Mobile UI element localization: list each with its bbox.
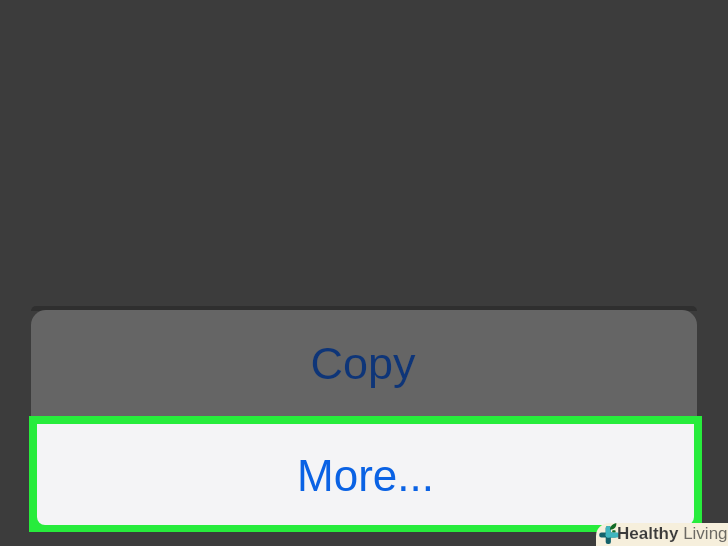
button[interactable]: Copy xyxy=(31,310,697,418)
button[interactable]: More... xyxy=(37,424,694,525)
staticText: Healthy Living xyxy=(617,524,728,543)
staticText: Copy xyxy=(310,338,416,388)
staticText: More... xyxy=(297,451,434,500)
other: Healthy Living logo xyxy=(597,523,621,546)
